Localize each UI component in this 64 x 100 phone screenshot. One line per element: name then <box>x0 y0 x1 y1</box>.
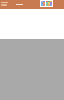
button[interactable] <box>1 4 7 6</box>
